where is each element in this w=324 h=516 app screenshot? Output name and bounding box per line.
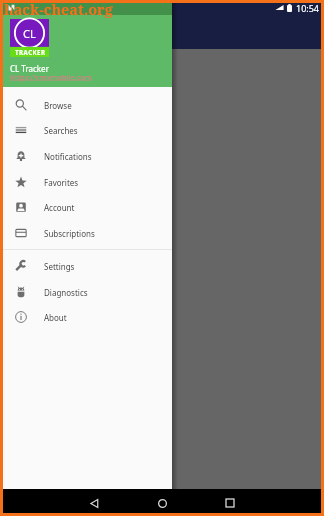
staticText: https://cmxmobile.com bbox=[10, 72, 92, 82]
staticText: Subscriptions bbox=[44, 228, 95, 239]
button[interactable]: Back bbox=[82, 491, 106, 515]
button[interactable]: Searches bbox=[0, 117, 172, 143]
staticText: CL Tracker bbox=[10, 63, 49, 74]
button[interactable]: Subscriptions bbox=[0, 220, 172, 246]
staticText: TRACKER bbox=[15, 48, 46, 56]
staticText: hack-cheat.org bbox=[4, 0, 113, 19]
staticText: Diagnostics bbox=[44, 287, 88, 298]
button[interactable]: Favorites bbox=[0, 169, 172, 195]
staticText: About bbox=[44, 312, 67, 323]
staticText: 10:54 bbox=[296, 2, 320, 14]
button[interactable]: Notifications bbox=[0, 143, 172, 169]
button[interactable]: Home bbox=[150, 491, 174, 515]
staticText: Favorites bbox=[44, 177, 79, 188]
staticText: Account bbox=[44, 202, 75, 213]
staticText: Settings bbox=[44, 261, 75, 272]
staticText: Notifications bbox=[44, 151, 92, 162]
staticText: Browse bbox=[44, 100, 72, 111]
button[interactable]: Browse bbox=[0, 92, 172, 118]
staticText: CL bbox=[23, 26, 36, 41]
button[interactable]: Settings bbox=[0, 253, 172, 279]
button[interactable]: About bbox=[0, 304, 172, 330]
button[interactable]: Recents bbox=[218, 491, 242, 515]
button[interactable]: Diagnostics bbox=[0, 279, 172, 305]
button[interactable]: Account bbox=[0, 194, 172, 220]
staticText: Searches bbox=[44, 125, 78, 136]
